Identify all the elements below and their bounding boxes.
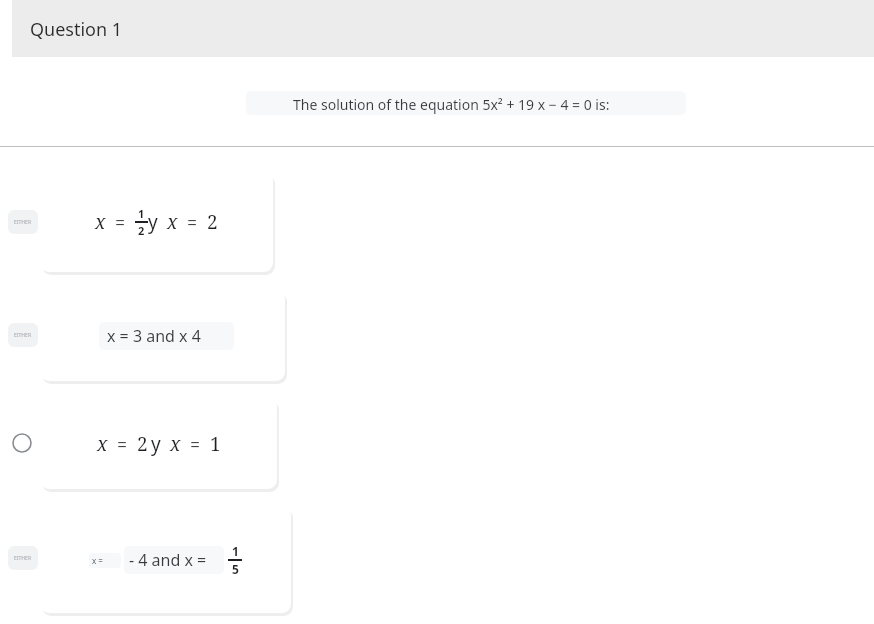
staticText: 2	[137, 431, 148, 457]
staticText: =	[187, 210, 198, 235]
staticText: 1	[138, 206, 145, 221]
button[interactable]: Either	[8, 210, 38, 234]
staticText: 1	[232, 543, 239, 559]
staticText: y	[148, 209, 158, 235]
button[interactable]: Either	[8, 546, 38, 570]
button[interactable]: x =	[40, 506, 291, 613]
staticText: 1	[210, 431, 221, 457]
staticText: EITHER	[14, 219, 32, 226]
staticText: The solution of the equation 5x² + 19 x …	[293, 95, 610, 114]
staticText: EITHER	[14, 332, 32, 339]
staticText: 2	[207, 209, 218, 235]
staticText: x	[170, 431, 181, 457]
staticText: =	[115, 210, 126, 235]
staticText: =	[117, 432, 128, 457]
staticText: x = 3 and x 4	[107, 325, 226, 347]
staticText: Question 1	[30, 17, 123, 42]
staticText: EITHER	[14, 555, 32, 562]
staticText: x	[167, 209, 178, 235]
staticText: 5	[232, 561, 239, 577]
button[interactable]: x	[40, 172, 273, 272]
staticText: x	[97, 431, 108, 457]
button[interactable]: x	[40, 398, 277, 489]
button[interactable]: x = 3 and x 4	[40, 290, 285, 381]
staticText: y	[151, 431, 161, 457]
staticText: x =	[92, 555, 118, 566]
staticText: =	[190, 432, 201, 457]
button[interactable]: Either	[8, 323, 38, 347]
staticText: x	[95, 209, 106, 235]
button[interactable]: Select answer	[7, 428, 37, 458]
staticText: - 4 and x =	[129, 549, 219, 571]
staticText: 2	[138, 223, 145, 238]
